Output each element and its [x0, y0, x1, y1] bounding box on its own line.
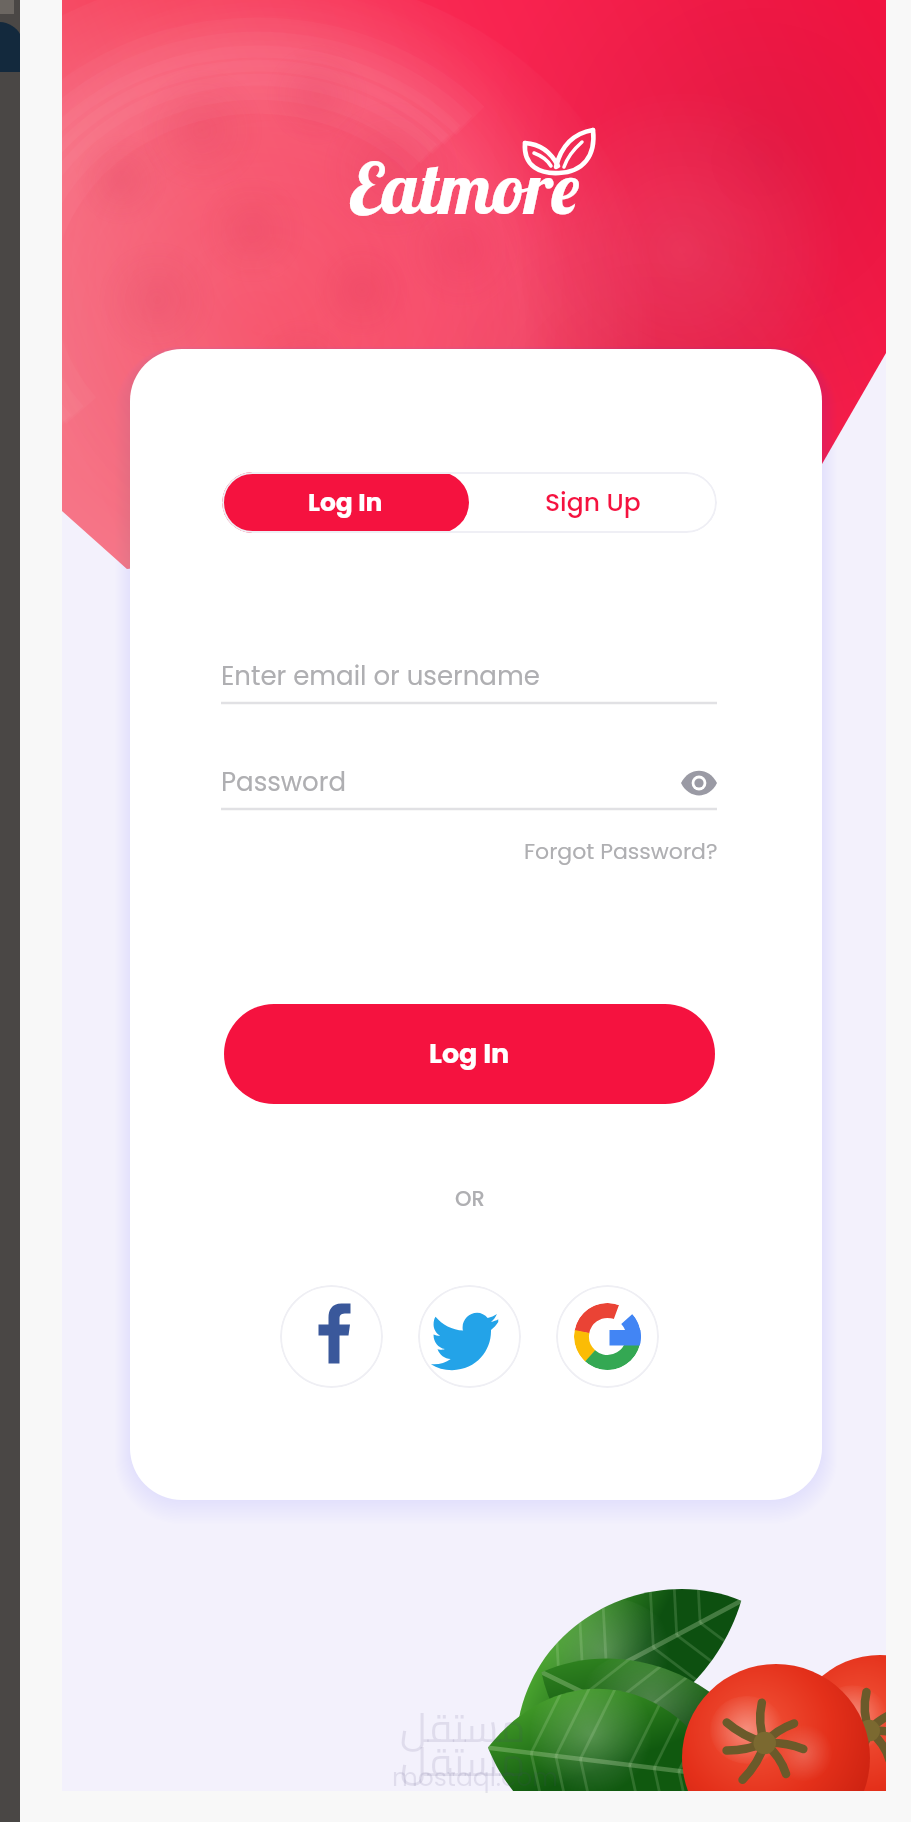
- staticText: Sign Up: [545, 485, 641, 520]
- button[interactable]: Sign in with Twitter: [418, 1285, 521, 1388]
- button[interactable]: Enter email or username: [221, 648, 717, 704]
- button[interactable]: Show password: [672, 757, 724, 809]
- button[interactable]: Forgot Password?: [450, 828, 718, 874]
- button[interactable]: Sign in with Facebook: [280, 1285, 383, 1388]
- button[interactable]: Sign in with Google: [556, 1285, 659, 1388]
- button[interactable]: Sign Up: [469, 472, 717, 533]
- staticText: Eatmore: [349, 142, 580, 232]
- staticText: مستقل: [400, 1724, 526, 1799]
- staticText: Password: [221, 764, 347, 800]
- staticText: OR: [455, 1184, 485, 1213]
- button[interactable]: Log In: [222, 472, 469, 533]
- staticText: مستقل: [400, 1690, 526, 1765]
- staticText: Log In: [308, 485, 383, 520]
- staticText: Log In: [429, 1035, 510, 1073]
- button[interactable]: Password: [221, 754, 717, 810]
- staticText: mostaql.com: [392, 1760, 559, 1795]
- staticText: Enter email or username: [221, 658, 540, 694]
- staticText: Forgot Password?: [524, 836, 718, 867]
- button[interactable]: Log In: [224, 1004, 715, 1104]
